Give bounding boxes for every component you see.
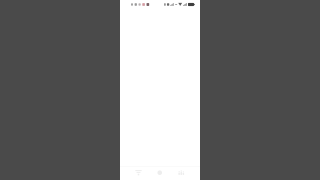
button[interactable]: Record [149, 168, 170, 177]
button[interactable]: Library [128, 168, 149, 177]
button[interactable]: People [170, 168, 192, 177]
